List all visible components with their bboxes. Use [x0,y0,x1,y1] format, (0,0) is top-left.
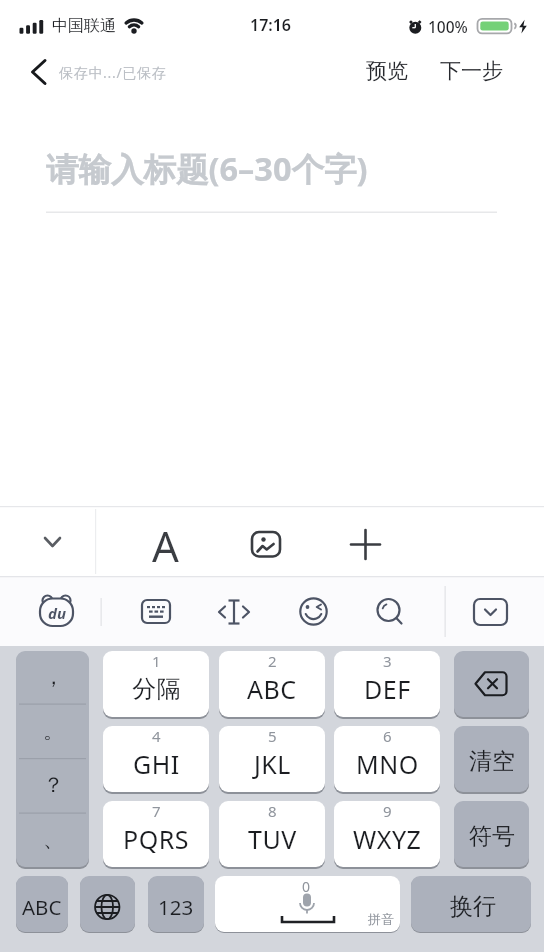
staticText: 请输入标题(6–30个字) [46,146,368,190]
staticText: A [152,517,179,567]
button[interactable] [80,876,135,932]
button[interactable] [470,595,511,629]
staticText: 保存中.../已保存 [59,63,167,82]
staticText: 123 [158,893,194,921]
button[interactable] [212,590,256,634]
staticText: ABC [247,672,297,706]
staticText: 1 [152,651,161,671]
staticText: 换行 [450,892,496,921]
staticText: PQRS [123,822,189,856]
button[interactable] [134,590,178,634]
button[interactable] [454,651,529,717]
staticText: 。 [43,718,64,744]
button[interactable]: 3 [334,651,440,717]
staticText: TUV [248,822,297,856]
button[interactable] [245,522,290,567]
button[interactable]: 下一步 [428,50,514,92]
button[interactable]: 预览 [352,50,422,92]
staticText: 9 [383,801,392,821]
button[interactable]: 符号 [454,801,529,867]
button[interactable]: du [36,592,78,632]
staticText: 符号 [469,822,515,851]
button[interactable]: 换行 [411,876,531,932]
staticText: 5 [268,726,277,746]
button[interactable] [343,522,388,567]
staticText: 预览 [366,58,408,84]
staticText: 8 [268,801,277,821]
staticText: 下一步 [440,58,503,84]
staticText: 0 [302,877,311,896]
button[interactable]: 0 [215,876,400,932]
staticText: 7 [152,801,161,821]
button[interactable]: 2 [219,651,325,717]
button[interactable]: ABC [16,876,68,932]
staticText: 2 [268,651,277,671]
button[interactable]: 123 [148,876,204,932]
staticText: 17:16 [250,14,292,36]
staticText: 6 [383,726,392,746]
staticText: 清空 [469,747,515,776]
button[interactable] [30,522,75,567]
button[interactable]: 6 [334,726,440,792]
staticText: 拼音 [368,911,394,927]
staticText: MNO [356,747,419,781]
staticText: 、 [43,826,64,852]
staticText: ， [43,664,64,690]
button[interactable]: 清空 [454,726,529,792]
button[interactable] [20,52,60,92]
button[interactable]: 7 [103,801,209,867]
staticText: 3 [383,651,392,671]
button[interactable]: 1 [103,651,209,717]
staticText: WXYZ [353,822,422,856]
staticText: du [48,603,66,623]
button[interactable]: 9 [334,801,440,867]
staticText: 中国联通 [52,16,116,36]
button[interactable]: A [140,517,190,567]
button[interactable] [291,589,336,634]
staticText: ABC [22,893,62,921]
button[interactable]: 5 [219,726,325,792]
staticText: JKL [254,747,291,781]
staticText: 100% [428,16,468,37]
staticText: GHI [133,747,180,781]
staticText: ？ [43,772,64,798]
staticText: 分隔 [132,674,181,704]
button[interactable]: 4 [103,726,209,792]
staticText: DEF [364,672,411,706]
button[interactable] [366,588,411,633]
button[interactable] [16,651,89,867]
button[interactable]: 8 [219,801,325,867]
staticText: 4 [152,726,161,746]
